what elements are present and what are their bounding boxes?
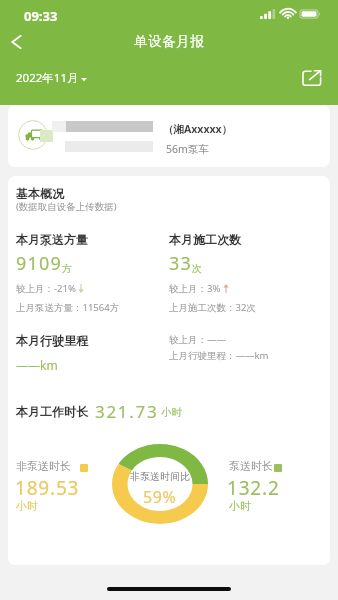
staticText: 59%: [143, 486, 177, 508]
staticText: （湘Axxxxx）: [163, 122, 233, 136]
staticText: 上月行驶里程：——km: [169, 349, 269, 362]
staticText: 56m泵车: [166, 142, 209, 156]
staticText: 较上月：-21%: [16, 282, 76, 295]
staticText: 9109: [16, 251, 62, 276]
staticText: 321.73: [95, 400, 159, 423]
button[interactable]: （湘Axxxxx）: [8, 105, 330, 167]
staticText: 本月泵送方量: [16, 232, 88, 247]
staticText: 基本概况: [16, 186, 64, 201]
staticText: 本月行驶里程: [16, 333, 88, 348]
staticText: 较上月：3%: [169, 282, 221, 295]
staticText: 小时: [161, 406, 182, 419]
staticText: 泵送时长: [229, 459, 273, 473]
staticText: 上月泵送方量：11564方: [16, 301, 120, 314]
staticText: 次: [192, 262, 202, 275]
staticText: 非泵送时间比: [130, 470, 190, 483]
staticText: 方: [62, 262, 72, 275]
button[interactable]: Share: [298, 64, 326, 90]
staticText: 小时: [16, 499, 38, 513]
staticText: 189.53: [15, 475, 80, 501]
staticText: 上月施工次数：32次: [169, 301, 256, 314]
staticText: 本月工作时长: [16, 404, 88, 419]
staticText: ——km: [16, 357, 58, 373]
staticText: 本月施工次数: [169, 232, 241, 247]
staticText: 33: [169, 251, 192, 276]
button[interactable]: Back: [2, 28, 30, 56]
staticText: (数据取自设备上传数据): [16, 200, 117, 213]
staticText: 09:33: [24, 7, 58, 25]
staticText: 小时: [229, 499, 251, 513]
staticText: 非泵送时长: [16, 459, 71, 473]
staticText: 单设备月报: [134, 33, 205, 50]
staticText: 2022年11月: [16, 70, 79, 86]
staticText: 132.2: [227, 475, 280, 501]
button[interactable]: 2022年11月: [16, 70, 87, 86]
staticText: 较上月：——: [169, 333, 227, 346]
